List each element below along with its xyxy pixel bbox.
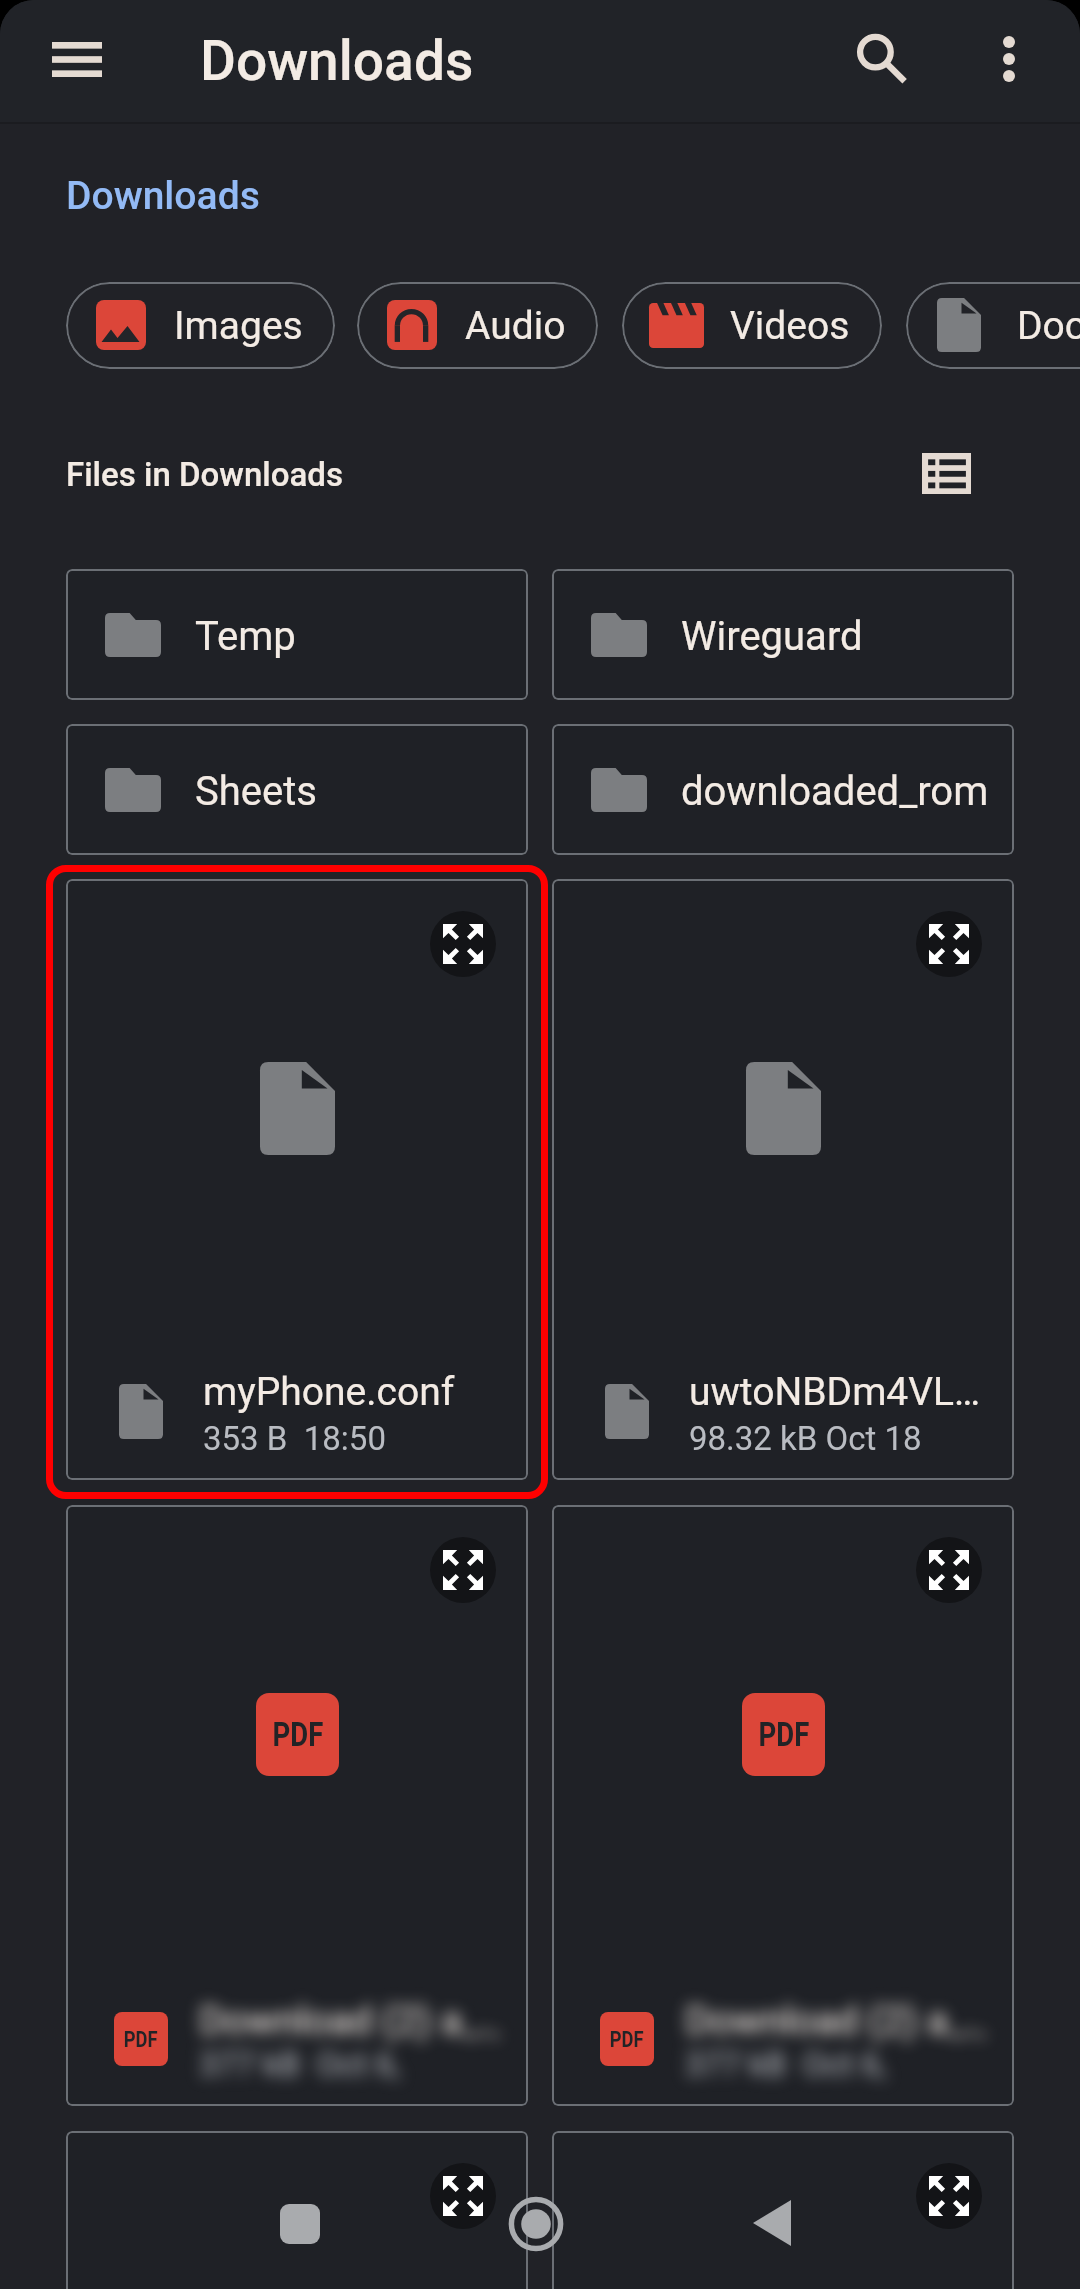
button[interactable]: Search bbox=[836, 13, 928, 105]
button[interactable]: downloaded_rom bbox=[552, 724, 1014, 855]
staticText: Images bbox=[174, 303, 303, 349]
staticText: 353 B 18:50 bbox=[203, 1419, 386, 1458]
button[interactable]: Expand preview bbox=[552, 2131, 1014, 2289]
staticText: 377 kB Oct 6, bbox=[685, 2045, 887, 2084]
staticText: Download (2) a_._ bbox=[199, 1998, 499, 2044]
staticText: PDF bbox=[124, 2027, 158, 2052]
button[interactable]: Wireguard bbox=[552, 569, 1014, 700]
button[interactable]: Home bbox=[490, 2178, 582, 2270]
staticText: myPhone.conf bbox=[203, 1369, 455, 1415]
button[interactable]: Temp bbox=[66, 569, 528, 700]
button[interactable]: Expand preview bbox=[552, 1505, 1014, 2106]
button[interactable]: Expand preview bbox=[430, 2163, 496, 2229]
button[interactable]: Doc bbox=[906, 282, 1080, 369]
button[interactable]: Expand preview bbox=[916, 2163, 982, 2229]
staticText: downloaded_rom bbox=[681, 768, 989, 815]
staticText: Wireguard bbox=[681, 613, 863, 660]
staticText: uwtoNBDm4VL… bbox=[689, 1369, 981, 1415]
button[interactable]: Recent apps bbox=[254, 2178, 346, 2270]
button[interactable]: Expand preview bbox=[66, 1505, 528, 2106]
staticText: 377 kB Oct 6, bbox=[199, 2045, 401, 2084]
button[interactable]: More options bbox=[963, 13, 1055, 105]
button[interactable]: Expand preview bbox=[66, 2131, 528, 2289]
button[interactable]: Audio bbox=[357, 282, 598, 369]
button[interactable]: Downloads bbox=[66, 173, 260, 219]
staticText: Audio bbox=[465, 303, 566, 349]
staticText: PDF bbox=[610, 2027, 644, 2052]
button[interactable]: Sheets bbox=[66, 724, 528, 855]
staticText: Doc bbox=[1017, 303, 1080, 349]
button[interactable]: Expand preview bbox=[430, 911, 496, 977]
button[interactable]: Expand preview bbox=[552, 879, 1014, 1480]
button[interactable]: Back bbox=[726, 2177, 818, 2269]
staticText: PDF bbox=[272, 1715, 323, 1754]
staticText: Download (2) a_._ bbox=[685, 1998, 985, 2044]
staticText: Videos bbox=[730, 303, 850, 349]
button[interactable]: Expand preview bbox=[916, 911, 982, 977]
staticText: Downloads bbox=[66, 173, 260, 219]
button[interactable]: Expand preview bbox=[916, 1537, 982, 1603]
button[interactable]: Expand preview bbox=[430, 1537, 496, 1603]
staticText: Temp bbox=[195, 613, 296, 660]
button[interactable]: Navigation menu bbox=[27, 17, 127, 101]
staticText: Sheets bbox=[195, 768, 317, 815]
staticText: PDF bbox=[758, 1715, 809, 1754]
staticText: Files in Downloads bbox=[66, 455, 344, 494]
button[interactable]: Expand preview bbox=[66, 879, 528, 1480]
staticText: Downloads bbox=[200, 29, 474, 93]
staticText: 98.32 kB Oct 18 bbox=[689, 1419, 922, 1458]
button[interactable]: Videos bbox=[622, 282, 882, 369]
button[interactable]: Switch to list view bbox=[905, 432, 987, 514]
button[interactable]: Images bbox=[66, 282, 335, 369]
